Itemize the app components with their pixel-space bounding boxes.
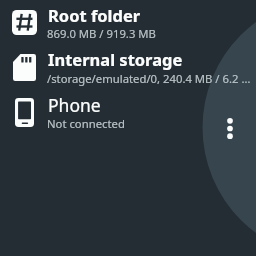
button[interactable]: Internal storage bbox=[0, 45, 256, 90]
staticText: Phone bbox=[48, 93, 253, 117]
staticText: Internal storage bbox=[48, 48, 253, 70]
staticText: Root folder bbox=[48, 4, 253, 26]
staticText: 869.0 MB / 919.3 MB bbox=[47, 26, 252, 41]
button[interactable]: More options bbox=[216, 109, 243, 147]
staticText: Not connected bbox=[47, 116, 252, 131]
button[interactable]: Root folder bbox=[0, 0, 256, 45]
button[interactable]: Phone bbox=[0, 90, 256, 135]
staticText: /storage/emulated/0, 240.4 MB / 6.2 … bbox=[47, 71, 252, 86]
